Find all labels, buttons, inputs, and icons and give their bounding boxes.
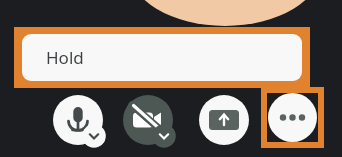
button[interactable]: Hold: [14, 27, 310, 88]
button[interactable]: Turn on camera: [123, 95, 176, 148]
button[interactable]: Mute microphone: [53, 95, 106, 148]
button[interactable]: More options: [261, 87, 324, 148]
staticText: Hold: [46, 46, 84, 69]
button[interactable]: Share screen: [199, 95, 252, 148]
